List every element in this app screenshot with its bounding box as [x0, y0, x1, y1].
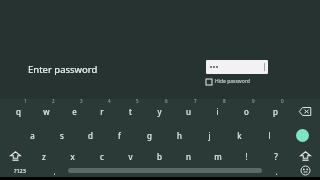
button[interactable]: ?123: [0, 166, 40, 175]
button[interactable]: ?: [261, 146, 290, 166]
button[interactable]: d: [76, 124, 105, 146]
staticText: e: [72, 106, 77, 117]
staticText: v: [128, 151, 133, 162]
staticText: f: [118, 130, 121, 141]
staticText: 4: [108, 98, 111, 104]
staticText: ?: [274, 151, 278, 162]
button[interactable]: Backspace: [290, 99, 320, 124]
button[interactable]: m: [203, 146, 232, 166]
staticText: o: [244, 106, 249, 117]
button[interactable]: [206, 60, 268, 74]
staticText: b: [157, 151, 162, 162]
staticText: i: [216, 106, 219, 117]
staticText: l: [268, 130, 271, 141]
button[interactable]: z: [30, 146, 58, 166]
staticText: m: [214, 151, 222, 162]
staticText: d: [88, 130, 93, 141]
button[interactable]: r: [88, 99, 116, 124]
staticText: p: [273, 106, 278, 117]
staticText: 9: [252, 98, 255, 104]
staticText: z: [42, 151, 46, 162]
button[interactable]: Shift: [290, 146, 320, 166]
staticText: y: [157, 106, 162, 117]
button[interactable]: s: [47, 124, 76, 146]
button[interactable]: Hide password: [206, 78, 250, 85]
staticText: .: [275, 166, 278, 175]
staticText: t: [129, 106, 132, 117]
button[interactable]: g: [134, 124, 164, 146]
staticText: 2: [52, 98, 55, 104]
button[interactable]: h: [164, 124, 194, 146]
button[interactable]: ,: [40, 166, 68, 175]
button[interactable]: x: [58, 146, 87, 166]
staticText: c: [100, 151, 104, 162]
staticText: 5: [136, 98, 139, 104]
button[interactable]: u: [174, 99, 203, 124]
button[interactable]: c: [87, 146, 116, 166]
button[interactable]: Enter: [296, 129, 309, 142]
button[interactable]: f: [105, 124, 134, 146]
staticText: !: [245, 151, 248, 162]
button[interactable]: q: [4, 99, 32, 124]
staticText: 7: [194, 98, 197, 104]
button[interactable]: e: [60, 99, 88, 124]
staticText: q: [16, 106, 21, 117]
button[interactable]: .: [262, 166, 290, 175]
staticText: 8: [223, 98, 226, 104]
button[interactable]: o: [232, 99, 261, 124]
staticText: ?123: [14, 167, 26, 174]
staticText: w: [43, 106, 50, 117]
staticText: a: [30, 130, 35, 141]
staticText: 1: [24, 98, 27, 104]
button[interactable]: b: [145, 146, 174, 166]
staticText: k: [237, 130, 242, 141]
staticText: Enter password: [28, 63, 98, 76]
button[interactable]: p: [261, 99, 290, 124]
button[interactable]: Emoji: [290, 166, 320, 175]
staticText: n: [186, 151, 191, 162]
button[interactable]: y: [145, 99, 174, 124]
button[interactable]: k: [224, 124, 254, 146]
button[interactable]: v: [116, 146, 145, 166]
staticText: x: [70, 151, 75, 162]
button[interactable]: i: [203, 99, 232, 124]
staticText: h: [177, 130, 182, 141]
staticText: 0: [281, 98, 284, 104]
staticText: 3: [80, 98, 83, 104]
staticText: Hide password: [215, 78, 250, 85]
button[interactable]: !: [232, 146, 261, 166]
staticText: r: [100, 106, 104, 117]
button[interactable]: n: [174, 146, 203, 166]
button[interactable]: a: [18, 124, 47, 146]
staticText: j: [208, 130, 211, 141]
button[interactable]: l: [254, 124, 284, 146]
staticText: 6: [165, 98, 168, 104]
button[interactable]: t: [116, 99, 145, 124]
staticText: g: [147, 130, 152, 141]
staticText: ,: [53, 166, 56, 175]
button[interactable]: Shift: [0, 146, 30, 166]
button[interactable]: w: [32, 99, 60, 124]
staticText: s: [60, 130, 64, 141]
staticText: u: [186, 106, 191, 117]
button[interactable]: j: [194, 124, 224, 146]
